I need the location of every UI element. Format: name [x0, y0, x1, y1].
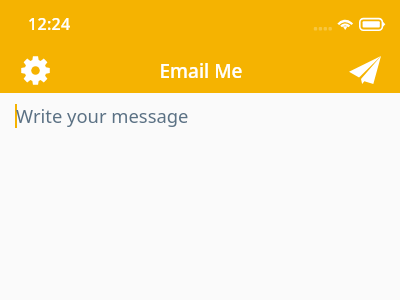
staticText: 12:24 — [28, 13, 71, 35]
button[interactable]: Write your message — [0, 93, 400, 300]
button[interactable]: Send — [345, 50, 385, 90]
staticText: Write your message — [16, 103, 189, 128]
button[interactable]: Email Me — [1, 58, 400, 84]
button[interactable]: Settings — [14, 49, 57, 92]
